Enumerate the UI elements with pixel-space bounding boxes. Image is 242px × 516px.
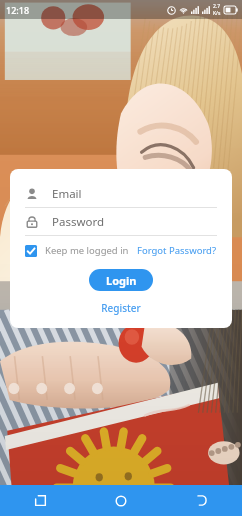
staticText: Forgot Password? bbox=[137, 244, 217, 257]
button[interactable]: Home bbox=[80, 485, 161, 516]
button[interactable]: Register bbox=[101, 301, 141, 315]
staticText: Login bbox=[106, 273, 137, 288]
other: Keep me logged in checkbox bbox=[25, 245, 37, 257]
button[interactable]: Login bbox=[89, 269, 153, 291]
staticText: Email bbox=[52, 186, 82, 202]
button[interactable]: Back bbox=[161, 485, 242, 516]
staticText: Register bbox=[101, 301, 141, 315]
staticText: K/s bbox=[213, 10, 221, 17]
button[interactable]: Password bbox=[25, 208, 217, 235]
staticText: Password bbox=[52, 214, 105, 230]
button[interactable]: Forgot Password? bbox=[137, 244, 217, 257]
button[interactable]: Email bbox=[25, 180, 217, 207]
staticText: 2.7 bbox=[213, 3, 221, 10]
button[interactable]: Keep me logged in checkbox bbox=[25, 244, 129, 257]
staticText: 12:18 bbox=[6, 4, 30, 16]
button[interactable]: Recents bbox=[0, 485, 80, 516]
staticText: Keep me logged in bbox=[45, 244, 129, 257]
